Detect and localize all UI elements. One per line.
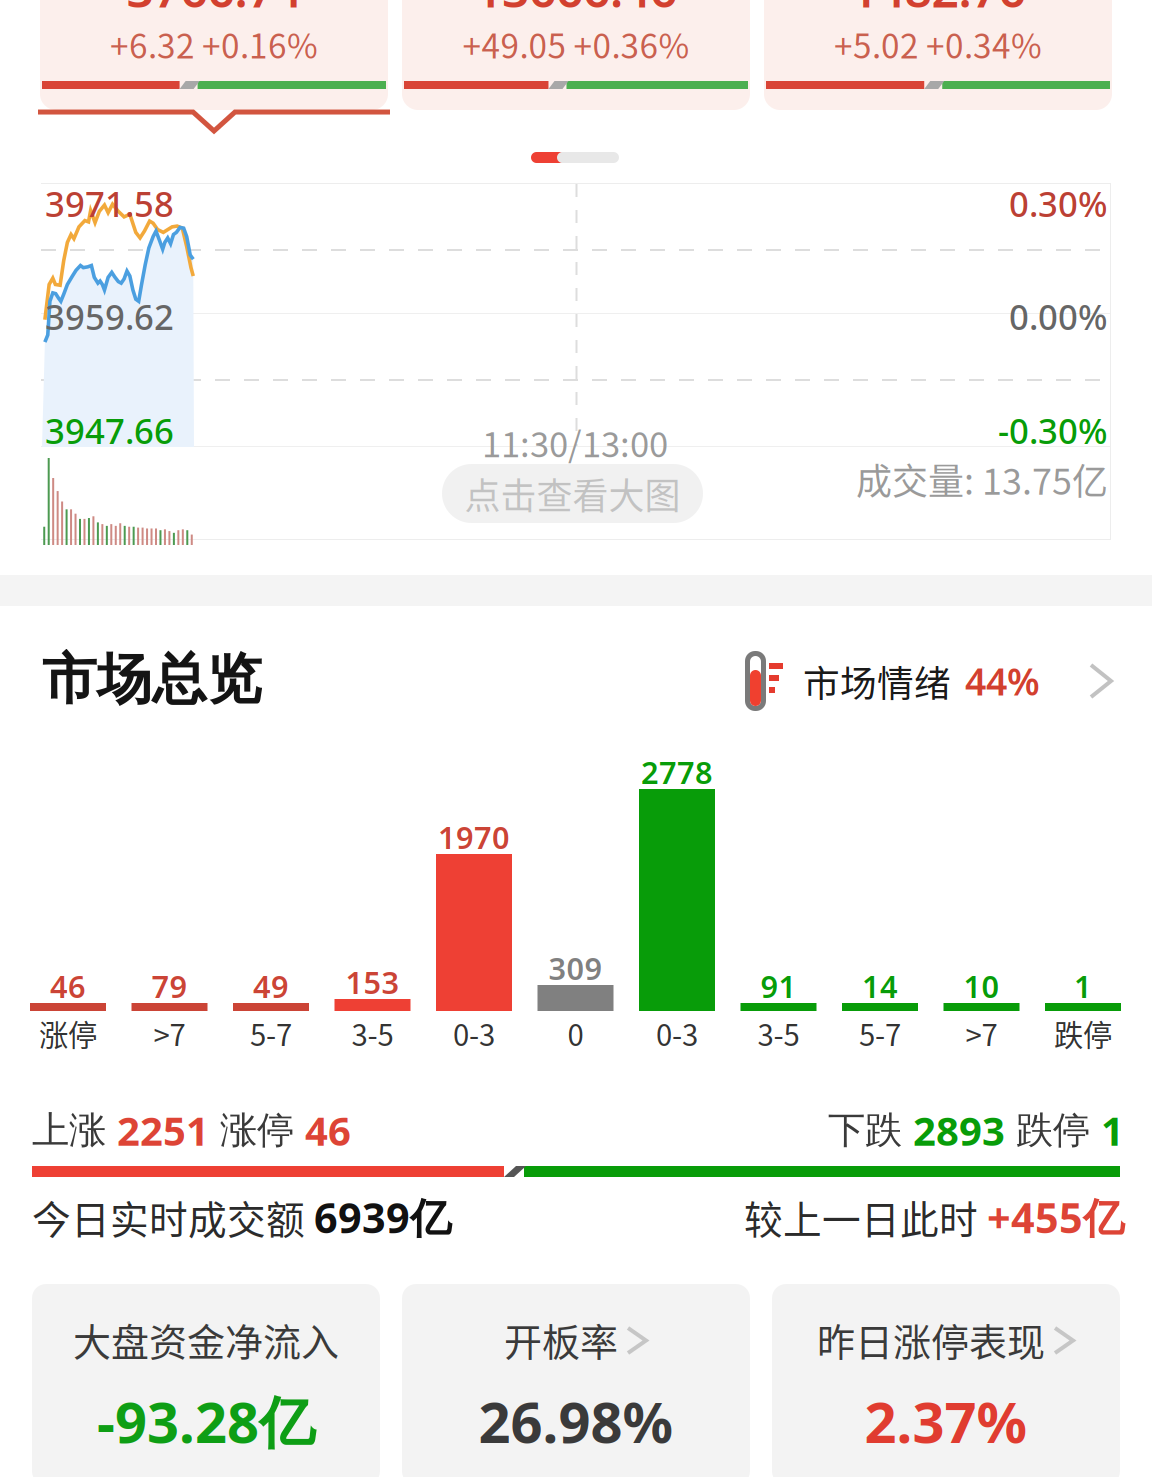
staticText: 跌停 xyxy=(1054,1012,1112,1054)
staticText: 26.98% xyxy=(478,1383,673,1459)
staticText: 309 xyxy=(548,947,602,989)
staticText: 0 xyxy=(567,1012,583,1054)
staticText: 3971.58 xyxy=(45,180,174,227)
staticText: 1 xyxy=(1101,1103,1124,1157)
staticText: 5-7 xyxy=(859,1012,901,1054)
staticText: 0-3 xyxy=(453,1012,495,1054)
staticText: 涨停 xyxy=(209,1107,305,1154)
staticText: 大盘资金净流入 xyxy=(73,1312,339,1367)
button[interactable]: 3766.74 xyxy=(40,0,388,110)
button[interactable]: 点击查看大图 xyxy=(442,464,703,523)
staticText: 14 xyxy=(862,965,898,1007)
staticText: 0.00% xyxy=(1009,293,1108,340)
staticText: 今日实时成交额 xyxy=(32,1189,314,1245)
staticText: 成交量: 13.75亿 xyxy=(856,453,1108,505)
staticText: >7 xyxy=(153,1012,185,1054)
staticText: 点击查看大图 xyxy=(464,467,680,519)
staticText: 涨停 xyxy=(39,1012,97,1054)
staticText: 跌停 xyxy=(1005,1107,1101,1154)
staticText: 开板率 xyxy=(504,1312,618,1367)
staticText: +49.05 +0.36% xyxy=(462,20,689,68)
staticText: 2251 xyxy=(117,1103,209,1157)
staticText: 2.37% xyxy=(864,1383,1027,1459)
button[interactable]: 昨日涨停表现 xyxy=(772,1284,1120,1477)
staticText: -0.30% xyxy=(998,407,1108,454)
button[interactable]: 市场情绪 xyxy=(745,651,1113,711)
staticText: 下跌 xyxy=(828,1107,913,1154)
staticText: 较上一日此时 xyxy=(744,1189,987,1245)
staticText: 79 xyxy=(151,965,187,1007)
staticText: 5-7 xyxy=(250,1012,292,1054)
staticText: 2778 xyxy=(641,751,713,793)
staticText: +6.32 +0.16% xyxy=(110,20,318,68)
staticText: 3959.62 xyxy=(45,293,174,340)
staticText: 市场情绪 xyxy=(803,654,951,708)
staticText: 1 xyxy=(1074,965,1092,1007)
staticText: 10 xyxy=(963,965,999,1007)
staticText: 3-5 xyxy=(351,1012,393,1054)
staticText: >7 xyxy=(965,1012,997,1054)
staticText: 3947.66 xyxy=(45,407,174,454)
button[interactable]: 大盘资金净流入 xyxy=(32,1284,380,1477)
staticText: 13666.46 xyxy=(475,0,677,22)
staticText: 6939亿 xyxy=(314,1189,451,1245)
staticText: 3-5 xyxy=(757,1012,799,1054)
staticText: +455亿 xyxy=(987,1189,1124,1245)
button[interactable]: 开板率 xyxy=(402,1284,750,1477)
staticText: 1482.76 xyxy=(850,0,1025,22)
staticText: 市场总览 xyxy=(42,645,262,714)
staticText: -93.28亿 xyxy=(97,1383,315,1459)
staticText: 昨日涨停表现 xyxy=(817,1312,1045,1367)
staticText: 46 xyxy=(50,965,86,1007)
button[interactable]: 1482.76 xyxy=(764,0,1112,110)
staticText: 1970 xyxy=(438,816,510,858)
staticText: 49 xyxy=(253,965,289,1007)
button[interactable]: 13666.46 xyxy=(402,0,750,110)
staticText: 44% xyxy=(965,656,1040,706)
staticText: 2893 xyxy=(913,1103,1005,1157)
staticText: 91 xyxy=(760,965,796,1007)
staticText: 0-3 xyxy=(656,1012,698,1054)
staticText: 153 xyxy=(345,961,399,1003)
staticText: 上涨 xyxy=(32,1107,117,1154)
staticText: 11:30/13:00 xyxy=(482,417,668,467)
staticText: +5.02 +0.34% xyxy=(834,20,1042,68)
staticText: 3766.74 xyxy=(126,0,301,22)
staticText: 46 xyxy=(305,1103,351,1157)
staticText: 0.30% xyxy=(1009,180,1108,227)
